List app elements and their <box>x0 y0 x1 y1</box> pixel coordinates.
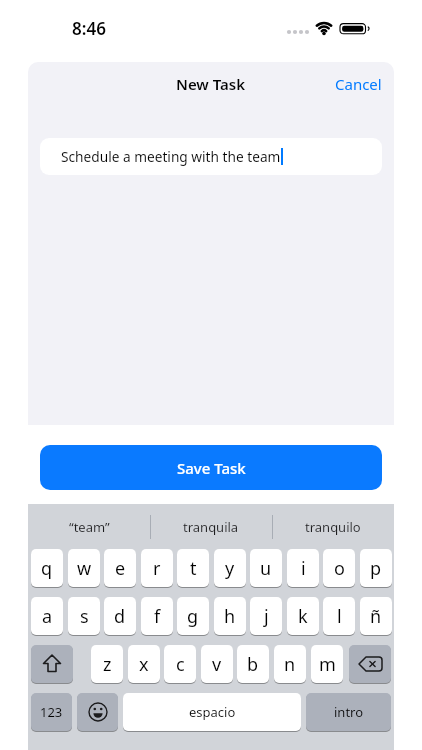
staticText: ñ <box>370 604 382 629</box>
staticText: z <box>103 652 112 677</box>
staticText: o <box>334 556 345 581</box>
staticText: d <box>114 604 126 629</box>
button[interactable]: f <box>141 597 173 635</box>
button[interactable]: u <box>250 549 282 587</box>
button[interactable]: ñ <box>360 597 392 635</box>
button[interactable]: Schedule a meeting with the team <box>40 138 382 175</box>
button[interactable] <box>77 693 118 731</box>
staticText: p <box>370 556 382 581</box>
staticText: w <box>77 556 92 581</box>
button[interactable]: i <box>287 549 319 587</box>
button[interactable] <box>31 645 73 683</box>
staticText: c <box>176 652 185 677</box>
staticText: y <box>225 556 235 581</box>
button[interactable]: “team” <box>28 504 150 549</box>
button[interactable]: b <box>237 645 269 683</box>
staticText: x <box>139 652 149 677</box>
staticText: tranquila <box>183 518 239 536</box>
staticText: v <box>212 652 222 677</box>
button[interactable]: a <box>31 597 63 635</box>
staticText: j <box>264 604 269 629</box>
staticText: intro <box>334 703 364 721</box>
button[interactable]: h <box>214 597 246 635</box>
button[interactable]: espacio <box>123 693 301 731</box>
staticText: Save Task <box>177 458 246 478</box>
staticText: q <box>41 556 53 581</box>
button[interactable]: l <box>323 597 355 635</box>
staticText: r <box>153 556 161 581</box>
button[interactable]: c <box>164 645 196 683</box>
staticText: s <box>80 604 89 629</box>
staticText: Cancel <box>335 74 382 94</box>
button[interactable]: z <box>91 645 123 683</box>
staticText: l <box>337 604 342 629</box>
staticText: tranquilo <box>305 518 361 536</box>
button[interactable]: x <box>128 645 160 683</box>
staticText: t <box>190 556 197 581</box>
button[interactable]: j <box>250 597 282 635</box>
staticText: 8:46 <box>72 17 106 40</box>
staticText: “team” <box>69 518 110 536</box>
button[interactable]: m <box>311 645 343 683</box>
button[interactable]: s <box>68 597 100 635</box>
button[interactable]: tranquila <box>150 504 272 549</box>
button[interactable]: o <box>323 549 355 587</box>
staticText: 123 <box>40 703 63 721</box>
staticText: h <box>224 604 236 629</box>
staticText: Schedule a meeting with the team <box>61 147 281 166</box>
button[interactable]: d <box>104 597 136 635</box>
staticText: u <box>260 556 272 581</box>
staticText: g <box>187 604 199 629</box>
button[interactable]: tranquilo <box>272 504 394 549</box>
button[interactable] <box>349 645 391 683</box>
button[interactable]: n <box>274 645 306 683</box>
button[interactable]: p <box>360 549 392 587</box>
button[interactable]: Cancel <box>335 66 382 102</box>
button[interactable]: q <box>31 549 63 587</box>
staticText: espacio <box>189 703 236 721</box>
staticText: m <box>319 652 336 677</box>
button[interactable]: k <box>287 597 319 635</box>
button[interactable]: v <box>201 645 233 683</box>
staticText: k <box>298 604 308 629</box>
staticText: New Task <box>176 74 246 94</box>
staticText: i <box>301 556 306 581</box>
staticText: f <box>154 604 161 629</box>
staticText: n <box>284 652 296 677</box>
button[interactable]: t <box>177 549 209 587</box>
staticText: b <box>247 652 259 677</box>
button[interactable]: 123 <box>31 693 72 731</box>
button[interactable]: e <box>104 549 136 587</box>
button[interactable]: Save Task <box>40 445 382 490</box>
button[interactable]: w <box>68 549 100 587</box>
button[interactable]: r <box>141 549 173 587</box>
staticText: e <box>115 556 126 581</box>
staticText: a <box>42 604 53 629</box>
button[interactable]: y <box>214 549 246 587</box>
button[interactable]: intro <box>306 693 391 731</box>
button[interactable]: g <box>177 597 209 635</box>
